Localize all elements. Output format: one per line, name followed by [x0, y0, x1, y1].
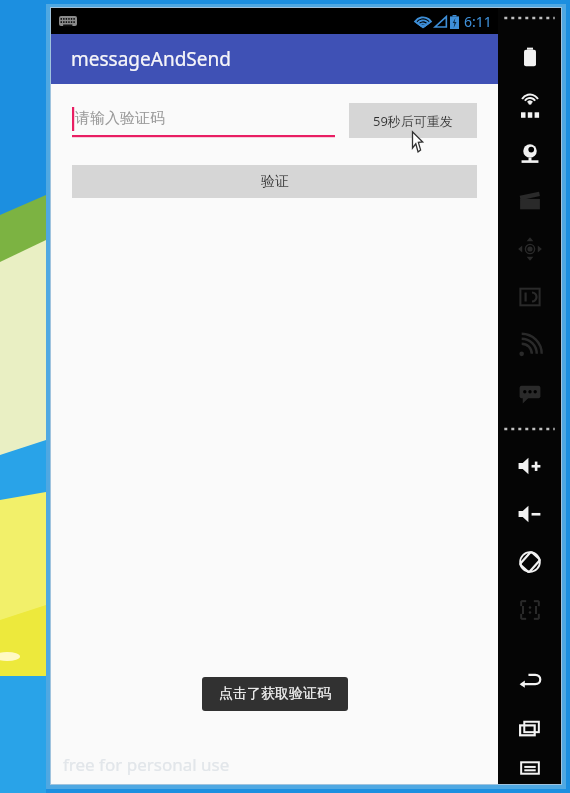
button[interactable]: ID [506, 273, 554, 321]
staticText: 59秒后可重发 [373, 112, 453, 130]
button[interactable]: 请输入验证码 [72, 103, 335, 143]
button[interactable]: D-pad [506, 225, 554, 273]
staticText: 6:11 [464, 12, 492, 31]
button[interactable]: Scale 1:1 [506, 586, 554, 634]
button[interactable]: Volume up [506, 442, 554, 490]
staticText: 请输入验证码 [75, 109, 165, 128]
button[interactable]: Camera [506, 129, 554, 177]
button[interactable]: Back [506, 656, 554, 704]
button[interactable]: 59秒后可重发 [349, 103, 477, 138]
button[interactable]: Cellular [506, 321, 554, 369]
staticText: messageAndSend [71, 46, 231, 72]
button[interactable]: GPS [506, 81, 554, 129]
staticText: 验证 [261, 173, 289, 191]
button[interactable]: Messages [506, 369, 554, 417]
button[interactable]: Menu [506, 752, 554, 784]
button[interactable]: Recorder [506, 177, 554, 225]
button[interactable]: 验证 [72, 165, 477, 198]
button[interactable]: Rotate [506, 538, 554, 586]
button[interactable]: Battery [506, 33, 554, 81]
staticText: free for personal use [63, 753, 230, 776]
button[interactable]: Recents [506, 704, 554, 752]
button[interactable]: Volume down [506, 490, 554, 538]
staticText: 点击了获取验证码 [219, 685, 331, 703]
